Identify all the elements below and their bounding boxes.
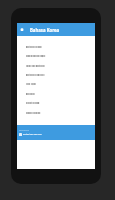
staticText: Masuk Rumah — [26, 112, 41, 115]
staticText: Pamit Pulang — [26, 101, 40, 104]
staticText: Install this app now — [23, 133, 42, 136]
button[interactable]: Berpisah — [17, 89, 95, 98]
staticText: Bertemu Orang — [26, 46, 42, 49]
staticText: Hari Libur — [26, 83, 36, 86]
staticText: Lama Tak Bertemu — [26, 65, 45, 68]
staticText: Lama Tak Bertemu — [26, 64, 45, 67]
staticText: Bertemu Pagi Hari — [26, 74, 45, 77]
staticText: Menanyakan Kabar — [26, 54, 46, 57]
button[interactable]: Bertemu Pagi Hari — [17, 70, 95, 79]
staticText: Pamit Pulang — [26, 102, 40, 105]
staticText: Sponsored — [19, 129, 29, 132]
button[interactable]: Sponsored — [17, 125, 95, 140]
staticText: Hari Libur — [26, 82, 36, 85]
button[interactable]: Lama Tak Bertemu — [17, 61, 95, 70]
button[interactable]: Hari Libur — [17, 79, 95, 88]
staticText: Bertemu Pagi Hari — [26, 73, 45, 76]
button[interactable]: Bertemu Orang — [17, 42, 95, 51]
staticText: Bahasa Korea — [30, 27, 60, 33]
staticText: Masuk Rumah — [26, 111, 41, 114]
button[interactable]: Pamit Pulang — [17, 98, 95, 107]
button[interactable]: Home — [17, 23, 27, 36]
button[interactable]: Masuk Rumah — [17, 108, 95, 117]
staticText: Berpisah — [26, 93, 35, 96]
staticText: Bertemu Orang — [26, 45, 42, 48]
staticText: Berpisah — [26, 92, 35, 95]
staticText: Menanyakan Kabar — [26, 55, 46, 58]
button[interactable]: Menanyakan Kabar — [17, 51, 95, 60]
